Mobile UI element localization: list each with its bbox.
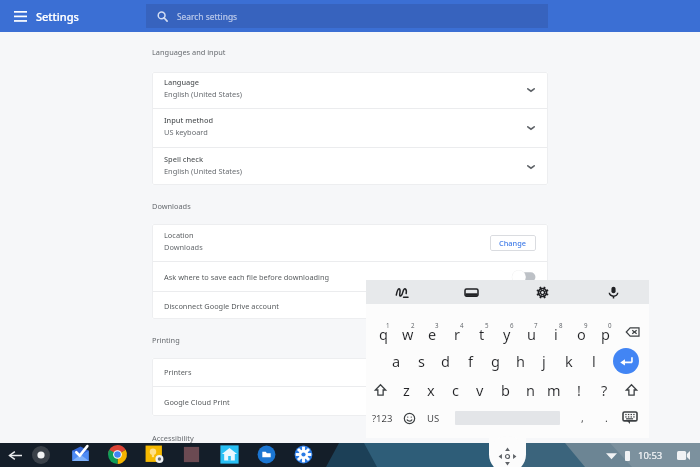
button[interactable]: f [458,348,482,374]
staticText: 5 [485,321,489,329]
button[interactable]: ! [567,378,591,402]
staticText: m [547,380,561,400]
button[interactable]: Slack [178,443,204,467]
button[interactable]: Spell check [152,148,548,185]
button[interactable]: n [518,378,542,402]
button[interactable]: 4 [445,318,469,346]
staticText: 10:53 [638,449,663,462]
button[interactable]: Google Cloud Print [152,387,548,416]
button[interactable]: Toggle [511,269,537,285]
staticText: i [554,324,558,344]
button[interactable]: Input method [152,109,548,147]
staticText: Settings [36,9,79,24]
button[interactable]: Keyboard settings [507,280,578,304]
button[interactable]: k [557,348,581,374]
button[interactable]: h [508,348,532,374]
staticText: 9 [584,321,588,329]
staticText: r [454,324,460,344]
staticText: 7 [534,321,538,329]
button[interactable]: Chrome [104,443,130,467]
button[interactable]: Language [152,72,548,108]
staticText: US keyboard [164,127,208,137]
button[interactable]: m [542,378,566,402]
staticText: Accessibility [152,433,194,443]
button[interactable]: b [493,378,517,402]
staticText: o [577,324,586,344]
staticText: f [468,351,473,371]
button[interactable]: , [574,406,590,430]
button[interactable]: Keep [141,443,167,467]
button[interactable]: ? [592,378,616,402]
button[interactable]: 7 [519,318,543,346]
staticText: . [605,411,608,425]
button[interactable]: j [532,348,556,374]
button[interactable]: 3 [420,318,444,346]
button[interactable]: Keyboard layout [436,280,507,304]
staticText: n [526,380,535,400]
button[interactable]: 0 [593,318,617,346]
button[interactable]: 8 [544,318,568,346]
button[interactable]: Voice input [578,280,649,304]
button[interactable]: v [468,378,492,402]
button[interactable]: ?123 [369,406,396,430]
button[interactable]: Shift [369,378,391,402]
button[interactable]: Ask where to save each file before downl… [152,262,548,291]
button[interactable]: Expand [523,82,539,98]
staticText: h [516,351,525,371]
button[interactable]: Search settings [146,4,548,28]
staticText: k [565,351,573,371]
button[interactable]: Printers [152,358,548,386]
staticText: y [503,324,511,344]
button[interactable]: a [384,348,408,374]
button[interactable]: Inbox [67,443,93,467]
button[interactable]: US [422,406,444,430]
staticText: Downloads [164,242,203,252]
button[interactable]: c [443,378,467,402]
button[interactable]: Status tray [606,449,690,462]
button[interactable]: Change [490,235,536,251]
button[interactable]: Files [253,443,279,467]
staticText: a [392,351,401,371]
button[interactable]: Expand [523,120,539,136]
staticText: g [491,351,500,371]
button[interactable]: Backspace [621,318,643,346]
button[interactable]: Settings [290,443,316,467]
button[interactable]: 2 [396,318,420,346]
staticText: 3 [435,321,439,329]
button[interactable]: x [419,378,443,402]
button[interactable]: Location [152,224,548,261]
staticText: Languages and input [152,47,226,57]
button[interactable]: Disconnect Google Drive account [152,292,548,319]
staticText: x [427,380,435,400]
button[interactable]: Move keyboard [489,436,526,461]
button[interactable]: Menu [8,0,32,32]
button[interactable]: 9 [569,318,593,346]
button[interactable]: Enter [613,348,639,374]
button[interactable]: 1 [371,318,395,346]
button[interactable]: Emoji [400,406,418,430]
button[interactable]: Hide keyboard [618,406,642,430]
button[interactable]: z [394,378,418,402]
button[interactable]: 6 [495,318,519,346]
button[interactable]: s [409,348,433,374]
button[interactable]: Launcher [30,443,52,467]
staticText: w [402,324,414,344]
button[interactable]: l [582,348,606,374]
staticText: 1 [386,321,390,329]
button[interactable]: Back [4,443,26,467]
button[interactable]: g [483,348,507,374]
staticText: Input method [164,115,214,125]
button[interactable]: . [598,406,614,430]
staticText: Ask where to save each file before downl… [164,272,330,282]
button[interactable]: d [433,348,457,374]
staticText: Disconnect Google Drive account [164,301,279,311]
button[interactable]: Home [216,443,242,467]
button[interactable]: Shift [620,378,642,402]
staticText: Language [164,77,200,87]
staticText: v [476,380,484,400]
button[interactable]: Expand [523,159,539,175]
button[interactable]: Handwriting [366,280,436,304]
button[interactable]: 5 [470,318,494,346]
staticText: English (United States) [164,166,242,176]
